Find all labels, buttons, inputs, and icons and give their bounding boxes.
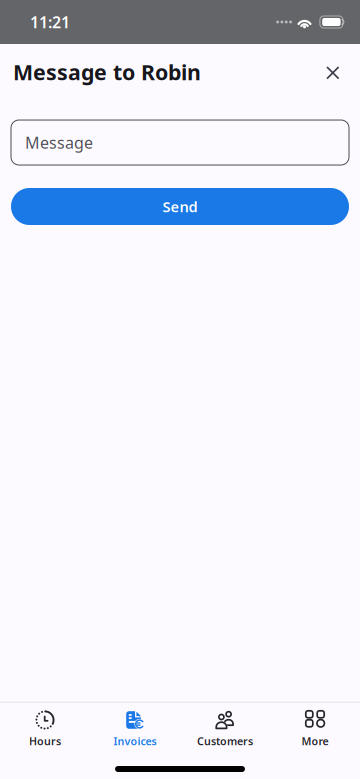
staticText: 11:21 (30, 11, 70, 33)
button[interactable]: More (270, 703, 360, 752)
staticText: Message to Robin (13, 58, 201, 86)
staticText: Invoices (113, 734, 156, 748)
button[interactable]: Invoices (90, 703, 180, 752)
button[interactable]: Send (11, 188, 349, 225)
staticText: Send (162, 197, 197, 216)
button[interactable]: Hours (0, 703, 90, 752)
button[interactable]: Close (315, 54, 351, 90)
button[interactable]: Customers (180, 703, 270, 752)
staticText: Hours (29, 734, 61, 748)
staticText: Message (25, 132, 93, 153)
staticText: More (301, 734, 328, 748)
staticText: Customers (197, 734, 253, 748)
